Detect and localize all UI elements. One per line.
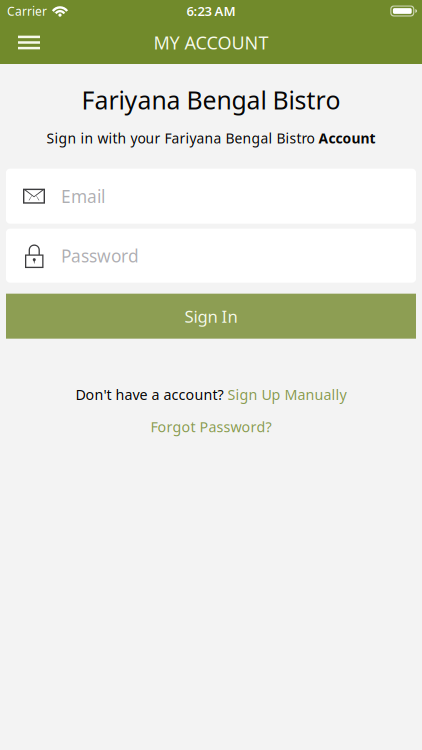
- button[interactable]: Sign In: [6, 294, 416, 339]
- staticText: Sign In: [184, 305, 237, 327]
- button[interactable]: Menu: [0, 21, 52, 63]
- button[interactable]: Sign Up Manually: [227, 385, 346, 404]
- button[interactable]: Password: [6, 229, 416, 283]
- staticText: Email: [61, 184, 105, 208]
- staticText: Carrier: [7, 3, 47, 19]
- staticText: Fariyana Bengal Bistro: [81, 83, 340, 117]
- staticText: Sign in with your Fariyana Bengal Bistro: [46, 129, 318, 148]
- staticText: MY ACCOUNT: [153, 30, 268, 55]
- staticText: Password: [61, 244, 139, 267]
- staticText: Account: [318, 129, 375, 148]
- staticText: Forgot Password?: [150, 417, 271, 436]
- button[interactable]: Email: [6, 169, 416, 224]
- staticText: Sign Up Manually: [227, 385, 346, 404]
- staticText: Don't have a account?: [75, 385, 227, 404]
- staticText: 6:23 AM: [186, 2, 235, 20]
- button[interactable]: Forgot Password?: [150, 417, 271, 436]
